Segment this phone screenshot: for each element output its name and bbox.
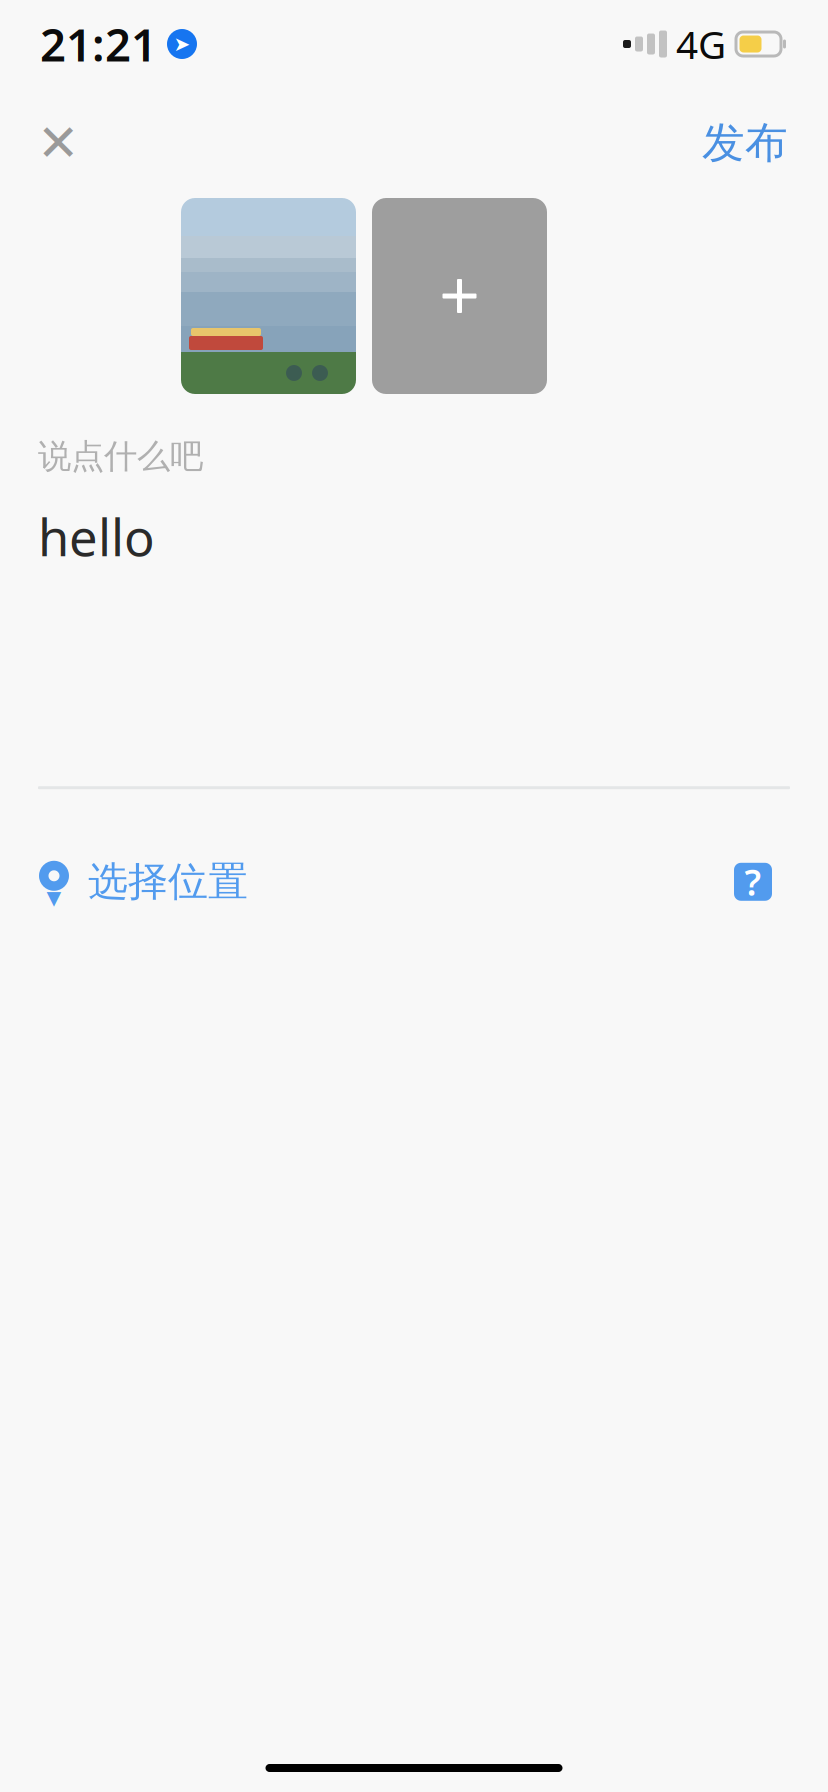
staticText: 发布 bbox=[702, 117, 788, 169]
button[interactable]: Help bbox=[724, 848, 782, 916]
button[interactable]: Selected photo bbox=[181, 198, 356, 394]
staticText: 21:21 bbox=[40, 14, 157, 74]
button[interactable]: Add photo bbox=[372, 198, 547, 394]
staticText: ✕ bbox=[37, 114, 79, 172]
button[interactable]: Close bbox=[20, 105, 96, 181]
staticText: 选择位置 bbox=[88, 857, 248, 906]
button[interactable]: ▾ bbox=[38, 837, 248, 926]
button[interactable]: 发布 bbox=[688, 103, 802, 183]
staticText: hello bbox=[38, 503, 155, 570]
staticText: ? bbox=[744, 858, 761, 906]
staticText: ▾ bbox=[46, 880, 61, 913]
staticText: ➤ bbox=[173, 33, 190, 55]
staticText: 4G bbox=[676, 18, 726, 70]
staticText: 说点什么吧 bbox=[38, 436, 203, 477]
